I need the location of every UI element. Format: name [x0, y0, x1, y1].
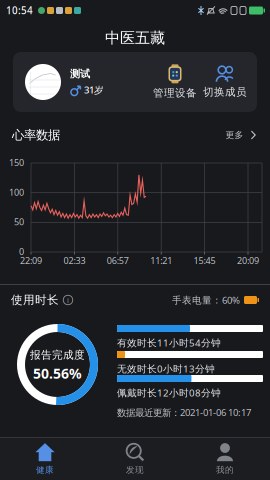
staticText: 报告完成度 [30, 348, 85, 362]
staticText: 切换成员 [203, 85, 247, 99]
staticText: 50.56% [33, 364, 82, 383]
staticText: 150 [9, 156, 24, 169]
staticText: 测试 [70, 68, 90, 80]
staticText: 31岁 [84, 83, 104, 96]
staticText: 15:45 [194, 254, 216, 267]
staticText: i [67, 295, 69, 305]
button[interactable]: 切换成员 [203, 65, 247, 99]
staticText: 手表电量：60% [172, 293, 240, 307]
staticText: 有效时长11小时54分钟 [117, 336, 221, 349]
staticText: 22:09 [20, 254, 42, 267]
staticText: 中医五藏 [105, 28, 165, 47]
staticText: 100 [9, 186, 24, 198]
staticText: 0 [19, 245, 24, 258]
staticText: 11:21 [150, 254, 172, 267]
button[interactable]: 健康 [0, 438, 90, 480]
staticText: 数据最近更新：2021-01-06 10:17 [117, 406, 251, 419]
button[interactable]: 我的 [180, 438, 270, 480]
button[interactable]: 管理设备 [153, 65, 197, 99]
staticText: 使用时长 [11, 293, 59, 307]
staticText: 更多 [226, 129, 244, 141]
staticText: 管理设备 [153, 86, 197, 100]
staticText: 我的 [216, 465, 234, 475]
staticText: 发现 [126, 465, 144, 475]
staticText: 无效时长0小时13分钟 [117, 362, 215, 375]
staticText: 20:09 [237, 254, 259, 267]
staticText: 心率数据 [12, 127, 60, 143]
button[interactable]: 心率数据 [0, 122, 270, 148]
staticText: 佩戴时长12小时08分钟 [117, 386, 221, 399]
staticText: 10:54 [6, 4, 33, 17]
button[interactable]: 发现 [90, 438, 180, 480]
staticText: 02:33 [63, 254, 85, 267]
staticText: 健康 [36, 465, 54, 475]
staticText: 50 [14, 216, 24, 228]
staticText: 06:57 [107, 254, 129, 267]
